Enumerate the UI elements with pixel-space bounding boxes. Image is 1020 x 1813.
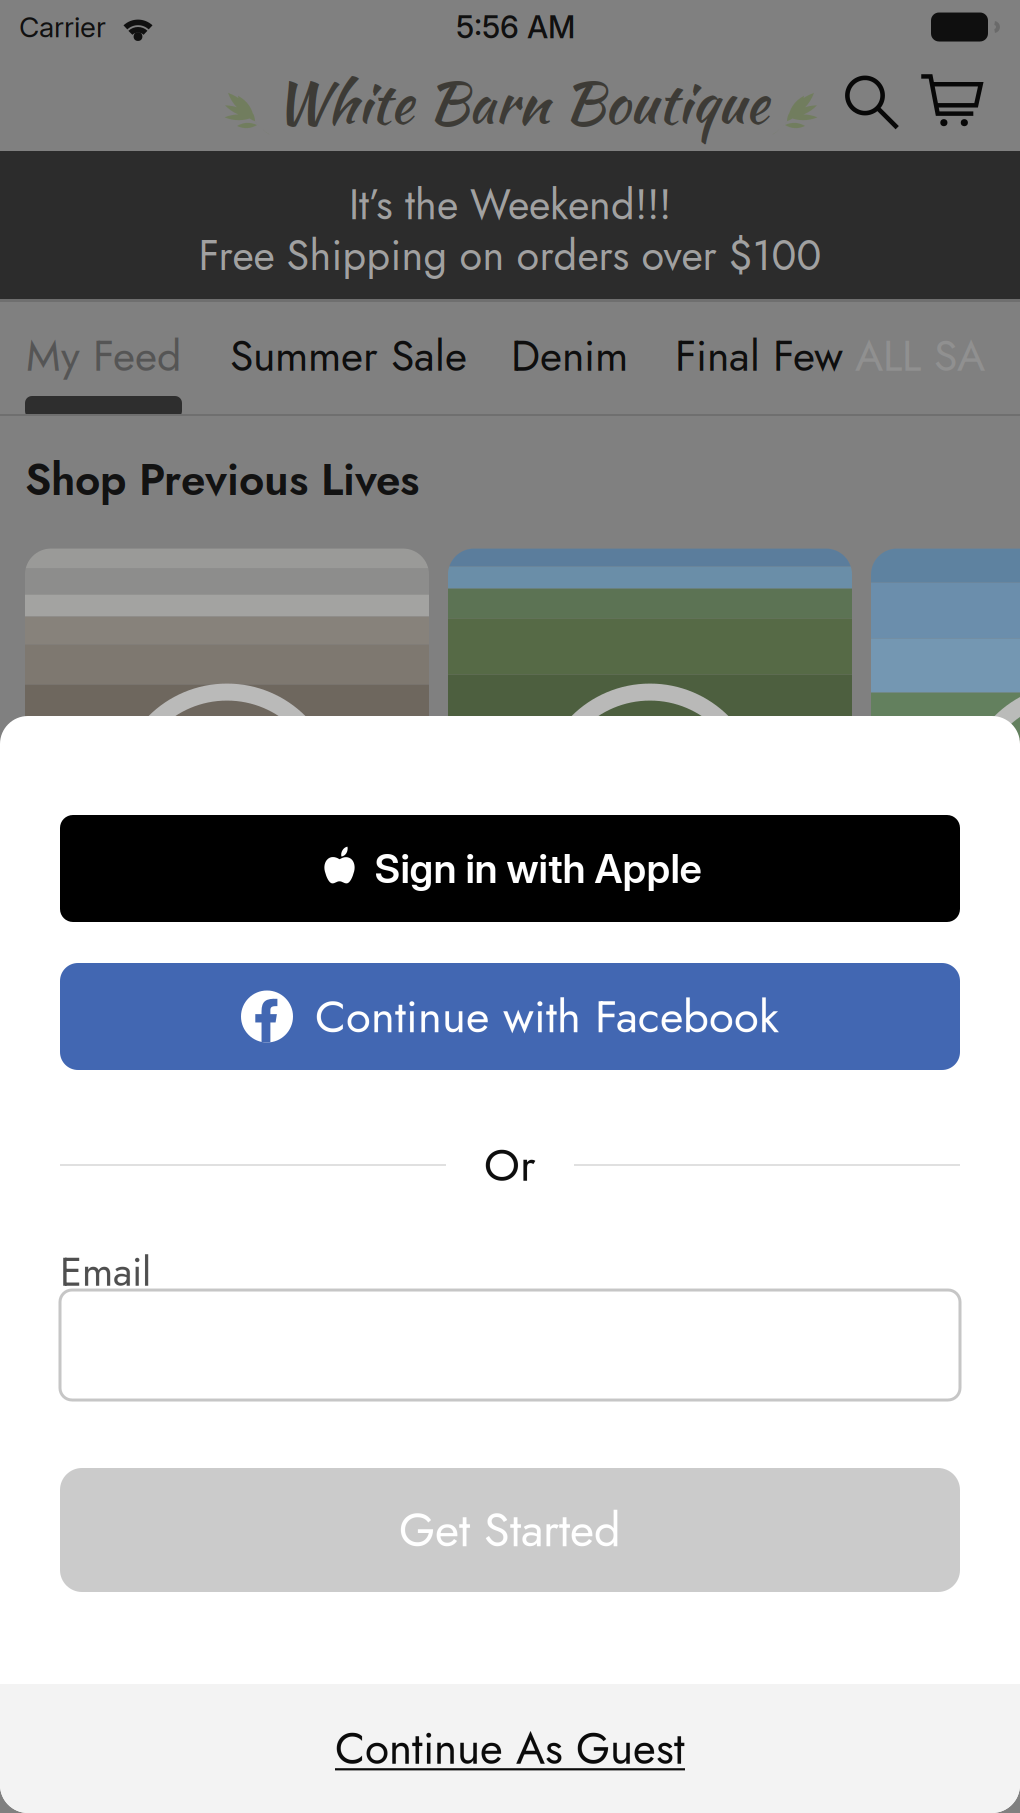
staticText: Continue As Guest	[335, 1717, 685, 1780]
button[interactable]: Continue with Facebook	[60, 963, 960, 1070]
button[interactable]: Sign in with Apple	[60, 815, 960, 922]
staticText: Free Shipping on orders over $100	[198, 226, 821, 285]
staticText: Summer Sale	[230, 325, 467, 387]
staticText: 5:56 AM	[456, 8, 575, 45]
staticText: My Feed	[26, 325, 181, 387]
staticText: Or	[484, 1132, 536, 1198]
staticText: Get Started	[399, 1496, 621, 1564]
button[interactable]: Summer Sale	[230, 325, 467, 387]
button[interactable]: Continue As Guest	[0, 1684, 1020, 1813]
staticText: Shop Previous Lives	[25, 448, 419, 512]
staticText: ALL SA	[855, 325, 985, 387]
staticText: Carrier	[19, 10, 106, 44]
staticText: White Barn Boutique	[274, 61, 768, 144]
staticText: Denim	[511, 325, 628, 387]
button[interactable]: My Feed	[26, 325, 181, 387]
button[interactable]: Shopping cart	[913, 56, 989, 148]
staticText: It’s the Weekend!!!	[349, 175, 671, 235]
button[interactable]: Denim	[511, 325, 628, 387]
staticText: Continue with Facebook	[315, 984, 779, 1049]
button[interactable]: Final Few	[675, 325, 843, 387]
staticText: Sign in with Apple	[374, 844, 701, 893]
staticText: Final Few	[675, 325, 843, 387]
staticText: Email	[60, 1243, 151, 1301]
button[interactable]: Get Started	[60, 1468, 960, 1592]
button[interactable]: Search	[835, 56, 909, 148]
